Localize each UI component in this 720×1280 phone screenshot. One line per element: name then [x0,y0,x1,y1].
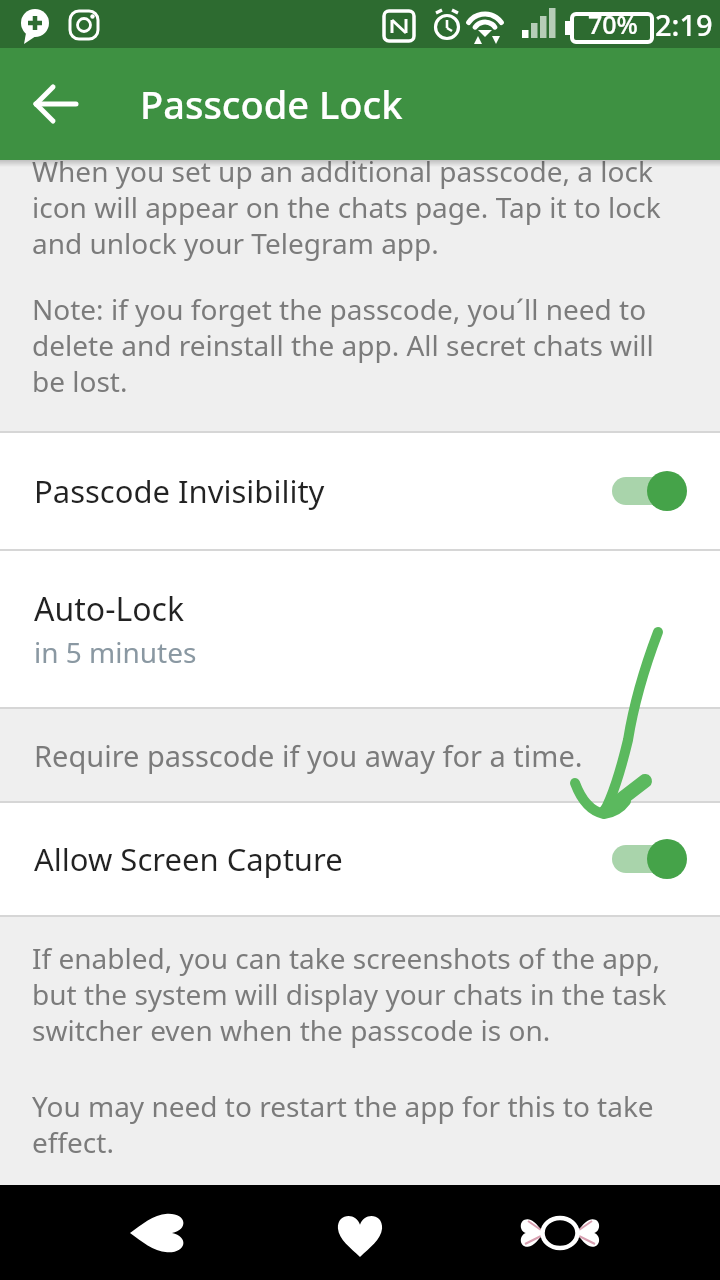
staticText: Passcode Lock [140,78,403,130]
staticText: Auto-Lock [34,587,185,631]
staticText: Note: if you forget the passcode, you´ll… [32,290,688,400]
staticText: 70% [588,7,638,41]
button[interactable] [612,469,688,513]
staticText: If enabled, you can take screenshots of … [32,939,688,1049]
staticText: You may need to restart the app for this… [32,1087,688,1161]
button[interactable]: Allow Screen Capture [0,803,720,915]
button[interactable]: Passcode Invisibility [0,433,720,549]
button[interactable] [612,837,688,881]
button[interactable] [24,72,88,136]
staticText: in 5 minutes [34,633,197,671]
staticText: Require passcode if you away for a time. [34,736,583,775]
button[interactable]: Auto-Lock [0,551,720,707]
button[interactable] [60,1185,260,1280]
staticText: 2:19 [655,5,713,44]
staticText: When you set up an additional passcode, … [32,152,688,262]
button[interactable] [260,1185,460,1280]
button[interactable] [460,1185,660,1280]
staticText: Allow Screen Capture [34,838,612,880]
staticText: Passcode Invisibility [34,470,612,512]
